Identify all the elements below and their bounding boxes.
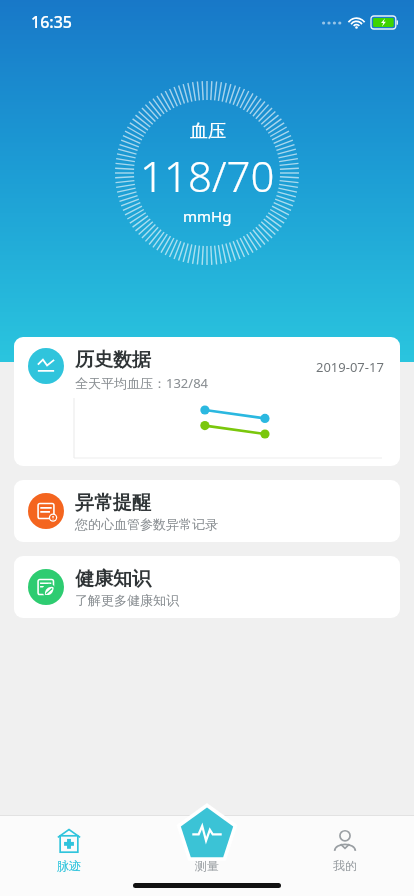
staticText: 血压 — [190, 120, 226, 143]
staticText: 了解更多健康知识 — [75, 592, 179, 608]
staticText: 16:35 — [31, 11, 72, 33]
button[interactable]: 脉迹 — [0, 816, 138, 873]
staticText: mmHg — [183, 206, 232, 226]
staticText: 全天平均血压：132/84 — [75, 374, 209, 392]
staticText: 我的 — [333, 858, 357, 873]
button[interactable]: 异常提醒 — [14, 480, 400, 542]
staticText: 健康知识 — [75, 567, 151, 591]
staticText: 您的心血管参数异常记录 — [75, 516, 218, 532]
button[interactable]: 测量 — [175, 801, 239, 865]
button[interactable]: 健康知识 — [14, 556, 400, 618]
staticText: 2019-07-17 — [316, 358, 384, 376]
button[interactable]: 测量 — [138, 816, 276, 873]
staticText: 历史数据 — [75, 348, 151, 372]
button[interactable]: 我的 — [276, 816, 414, 873]
button[interactable]: 历史数据 — [14, 337, 400, 466]
staticText: 异常提醒 — [75, 491, 151, 515]
staticText: 118/70 — [140, 147, 275, 204]
staticText: 脉迹 — [57, 858, 81, 873]
staticText: 测量 — [195, 858, 219, 873]
